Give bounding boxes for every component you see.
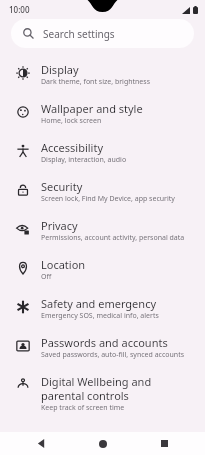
staticText: Emergency SOS, medical info, alerts [41,311,159,321]
staticText: Accessibility [41,140,104,155]
staticText: Dark theme, font size, brightness [41,77,151,87]
staticText: Search settings [43,27,115,41]
staticText: Keep track of screen time [41,403,125,413]
staticText: Screen lock, Find My Device, app securit… [41,194,175,204]
staticText: Privacy [41,218,78,233]
button[interactable]: Wallpaper and style [0,94,205,133]
button[interactable]: Accessibility [0,133,205,172]
button[interactable]: Back [20,432,62,455]
button[interactable]: Safety and emergency [0,289,205,328]
staticText: Safety and emergency [41,296,157,311]
button[interactable]: Digital Wellbeing and parental controls [0,367,205,420]
staticText: Saved passwords, auto-fill, synced accou… [41,350,185,360]
staticText: Wallpaper and style [41,101,143,116]
button[interactable]: Location [0,250,205,289]
button[interactable]: Recent apps [143,432,185,455]
staticText: Passwords and accounts [41,335,168,350]
button[interactable]: Privacy [0,211,205,250]
staticText: Digital Wellbeing and parental controls [41,374,193,403]
button[interactable]: Search settings [11,19,194,48]
staticText: Display, interaction, audio [41,155,127,165]
staticText: Permissions, account activity, personal … [41,233,185,243]
staticText: 10:00 [9,4,30,15]
button[interactable]: Display [0,55,205,94]
staticText: Security [41,179,83,194]
button[interactable]: Security [0,172,205,211]
staticText: Off [41,272,52,282]
button[interactable]: Passwords and accounts [0,328,205,367]
button[interactable]: Home [82,432,124,455]
staticText: Home, lock screen [41,116,102,126]
staticText: Display [41,62,79,77]
staticText: Location [41,257,86,272]
